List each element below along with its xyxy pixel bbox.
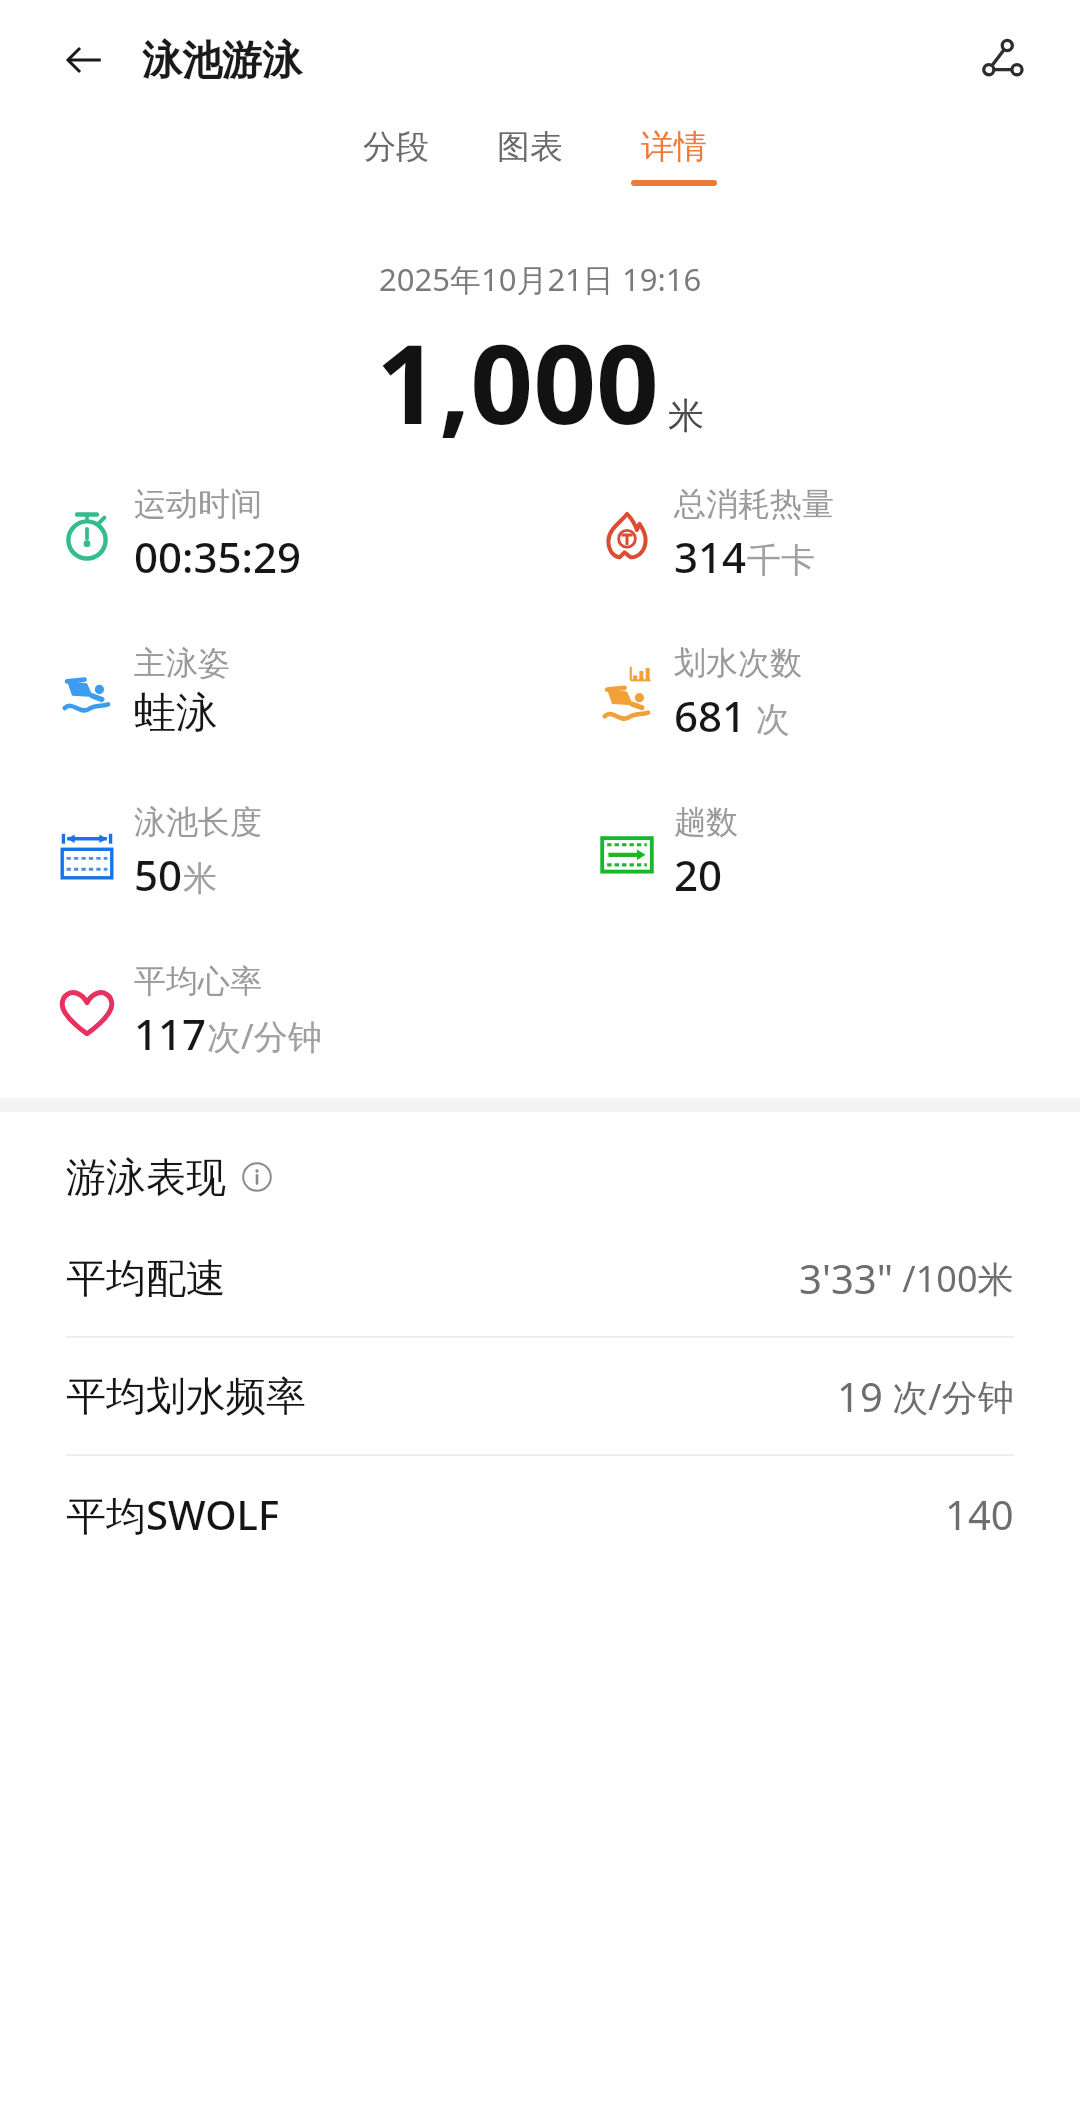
staticText: 681 <box>674 687 747 744</box>
staticText: 米 <box>183 857 217 900</box>
button[interactable]: 总消耗热量 <box>596 484 1080 585</box>
staticText: 次 <box>747 695 790 741</box>
button[interactable]: 平均SWOLF <box>0 1456 1080 1572</box>
staticText: 50 <box>134 846 183 903</box>
button[interactable]: 划水次数 <box>596 643 1080 744</box>
button[interactable]: 主泳姿 <box>56 643 540 740</box>
staticText: 平均心率 <box>134 961 262 1001</box>
staticText: 图表 <box>497 126 563 168</box>
staticText: 次/分钟 <box>207 1013 322 1059</box>
staticText: 2025年10月21日 19:16 <box>379 258 702 300</box>
staticText: /100米 <box>893 1254 1014 1303</box>
staticText: 运动时间 <box>134 484 262 524</box>
staticText: 117 <box>134 1005 207 1062</box>
staticText: 314 <box>674 528 747 585</box>
button[interactable]: 平均划水频率 <box>0 1338 1080 1454</box>
staticText: 19 <box>837 1369 883 1423</box>
button[interactable]: Share <box>972 30 1032 90</box>
staticText: 游泳表现 <box>66 1152 226 1202</box>
button[interactable]: Back <box>56 32 112 88</box>
button[interactable]: 泳池长度 <box>56 802 540 903</box>
staticText: 20 <box>674 846 723 903</box>
staticText: 划水次数 <box>674 643 802 683</box>
staticText: 趟数 <box>674 802 738 842</box>
staticText: 1,000 <box>376 306 660 456</box>
staticText: 详情 <box>641 126 707 168</box>
staticText: 次/分钟 <box>883 1372 1014 1421</box>
button[interactable]: 平均心率 <box>56 961 540 1062</box>
button[interactable]: 运动时间 <box>56 484 540 585</box>
staticText: 3'33" <box>799 1251 893 1305</box>
staticText: 泳池游泳 <box>142 35 302 85</box>
staticText: 平均SWOLF <box>66 1487 280 1542</box>
staticText: 千卡 <box>747 539 815 582</box>
button[interactable]: 详情 <box>623 120 725 192</box>
staticText: 平均配速 <box>66 1253 226 1303</box>
staticText: 蛙泳 <box>134 687 218 740</box>
staticText: 总消耗热量 <box>674 484 834 524</box>
staticText: 分段 <box>363 126 429 168</box>
staticText: 平均划水频率 <box>66 1371 306 1421</box>
button[interactable]: 趟数 <box>596 802 1080 903</box>
staticText: 主泳姿 <box>134 643 230 683</box>
button[interactable]: Info <box>240 1160 274 1194</box>
staticText: 泳池长度 <box>134 802 262 842</box>
button[interactable]: 平均配速 <box>0 1220 1080 1336</box>
staticText: 140 <box>945 1487 1014 1541</box>
staticText: 00:35:29 <box>134 528 301 585</box>
staticText: 米 <box>668 393 704 438</box>
button[interactable]: 图表 <box>489 120 571 186</box>
button[interactable]: 分段 <box>355 120 437 186</box>
